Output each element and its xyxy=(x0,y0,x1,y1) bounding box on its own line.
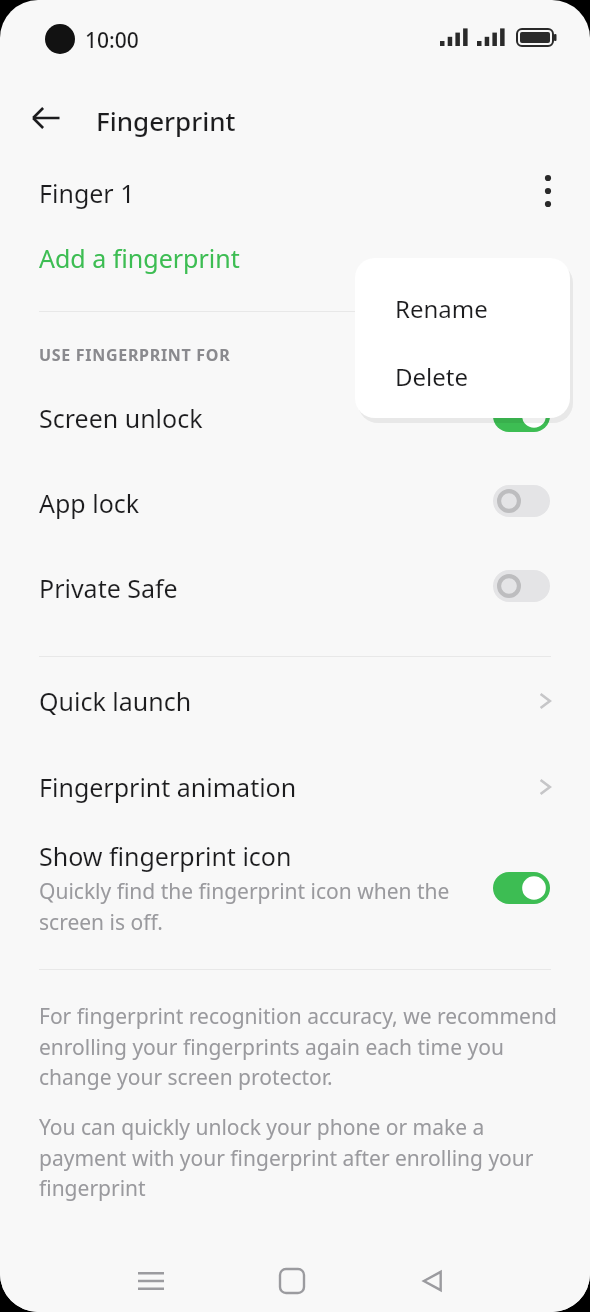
button[interactable]: Quick launch xyxy=(0,657,590,743)
button[interactable]: Recents xyxy=(120,1250,182,1312)
button[interactable]: Back xyxy=(402,1250,464,1312)
button[interactable]: Show fingerprint icon xyxy=(0,829,590,947)
staticText: Delete xyxy=(395,360,468,393)
button[interactable]: App lock xyxy=(0,459,590,544)
button[interactable]: Rename xyxy=(355,270,570,338)
button[interactable]: Delete xyxy=(355,338,570,406)
staticText: For fingerprint recognition accuracy, we… xyxy=(39,1002,560,1091)
staticText: Quickly find the fingerprint icon when t… xyxy=(39,877,469,936)
button[interactable]: Private Safe xyxy=(0,544,590,629)
staticText: Private Safe xyxy=(39,571,178,605)
button[interactable]: Screen unlock xyxy=(0,374,590,459)
button[interactable]: More options xyxy=(525,168,571,214)
staticText: Screen unlock xyxy=(39,401,203,435)
button[interactable]: Add a fingerprint xyxy=(0,228,590,288)
staticText: Rename xyxy=(395,292,488,325)
staticText: USE FINGERPRINT FOR xyxy=(39,344,231,366)
staticText: You can quickly unlock your phone or mak… xyxy=(39,1113,560,1202)
button[interactable]: Home xyxy=(261,1250,323,1312)
staticText: Add a fingerprint xyxy=(39,241,240,275)
button[interactable]: Back xyxy=(22,94,70,142)
staticText: Show fingerprint icon xyxy=(39,839,292,873)
staticText: App lock xyxy=(39,486,140,520)
staticText: Quick launch xyxy=(39,684,192,718)
button[interactable]: Fingerprint animation xyxy=(0,743,590,829)
staticText: Fingerprint xyxy=(96,103,236,138)
staticText: Finger 1 xyxy=(39,176,135,210)
button[interactable]: Finger 1 xyxy=(0,156,590,228)
staticText: 10:00 xyxy=(85,26,139,55)
staticText: Fingerprint animation xyxy=(39,770,297,804)
